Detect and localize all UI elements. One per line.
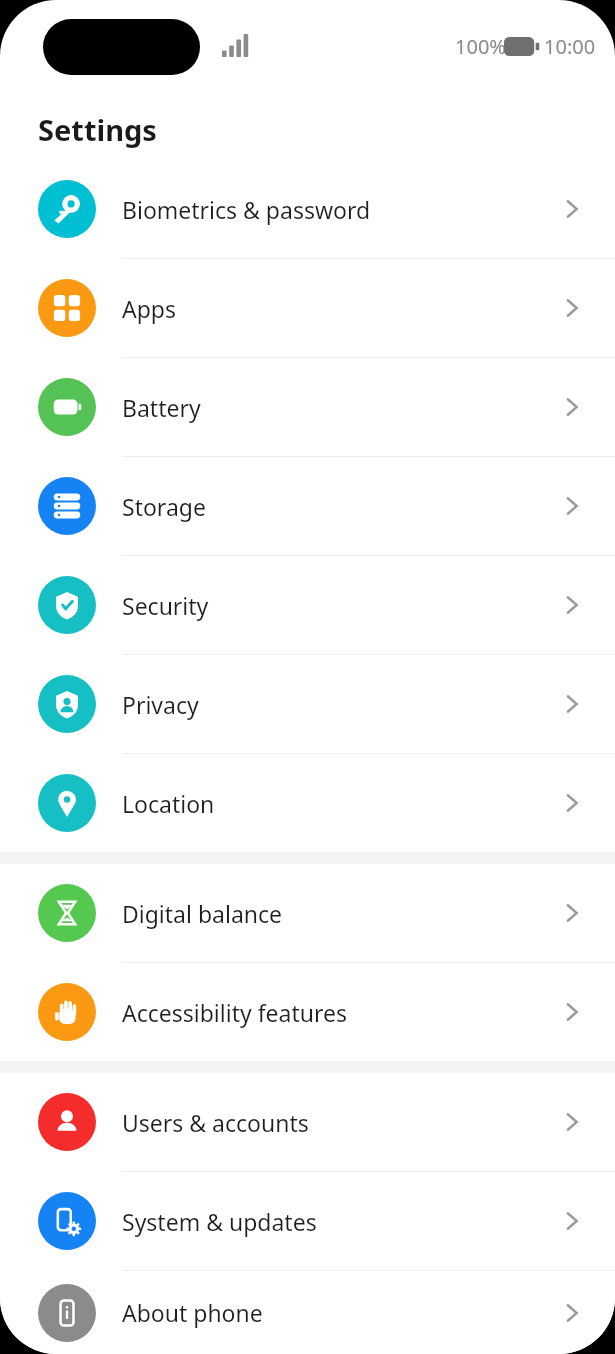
button[interactable]: Accessibility features: [0, 963, 615, 1061]
button[interactable]: Apps: [0, 259, 615, 357]
staticText: Battery: [122, 392, 201, 423]
staticText: Accessibility features: [122, 997, 348, 1028]
staticText: Apps: [122, 293, 177, 324]
other: System & updates: [559, 1208, 585, 1234]
staticText: Security: [122, 590, 209, 621]
other: Security: [559, 592, 585, 618]
other: Location: [559, 790, 585, 816]
button[interactable]: Biometrics & password: [0, 160, 615, 258]
other: Apps: [559, 295, 585, 321]
other: About phone: [559, 1300, 585, 1326]
button[interactable]: Security: [0, 556, 615, 654]
staticText: System & updates: [122, 1206, 317, 1237]
button[interactable]: System & updates: [0, 1172, 615, 1270]
other: Users & accounts: [559, 1109, 585, 1135]
staticText: 100%: [455, 33, 506, 60]
other: Battery: [559, 394, 585, 420]
staticText: Users & accounts: [122, 1107, 309, 1138]
other: Privacy: [559, 691, 585, 717]
button[interactable]: Digital balance: [0, 864, 615, 962]
other: Storage: [559, 493, 585, 519]
button[interactable]: Users & accounts: [0, 1073, 615, 1171]
staticText: Settings: [38, 110, 157, 149]
staticText: Location: [122, 788, 215, 819]
staticText: Digital balance: [122, 898, 283, 929]
button[interactable]: Battery: [0, 358, 615, 456]
staticText: About phone: [122, 1297, 263, 1328]
other: Digital balance: [559, 900, 585, 926]
button[interactable]: Storage: [0, 457, 615, 555]
button[interactable]: Location: [0, 754, 615, 852]
button[interactable]: About phone: [0, 1271, 615, 1354]
staticText: 10:00: [544, 33, 596, 60]
other: Biometrics & password: [559, 196, 585, 222]
staticText: Privacy: [122, 689, 199, 720]
button[interactable]: Privacy: [0, 655, 615, 753]
other: Accessibility features: [559, 999, 585, 1025]
staticText: Storage: [122, 491, 206, 522]
staticText: Biometrics & password: [122, 194, 371, 225]
